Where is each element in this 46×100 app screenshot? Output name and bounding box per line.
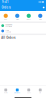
staticText: Coupons: [5, 24, 12, 26]
staticText: 1,280 pts: [5, 31, 11, 33]
staticText: Recv: [27, 19, 31, 20]
button[interactable]: Ship: [11, 14, 23, 20]
staticText: Rate: [39, 19, 42, 20]
button[interactable]: Coupons: [0, 23, 46, 28]
button[interactable]: Cart: [23, 89, 34, 94]
staticText: Ship: [16, 19, 19, 20]
staticText: 9:41: [2, 0, 9, 4]
button[interactable]: Me: [34, 89, 46, 94]
staticText: Orders: [1, 6, 10, 9]
button[interactable]: Recv: [23, 14, 34, 20]
button[interactable]: Points: [0, 28, 46, 34]
button[interactable]: Rate: [34, 14, 46, 20]
staticText: Pay: [4, 19, 7, 20]
button[interactable]: Pay: [0, 14, 11, 20]
staticText: All Orders: [1, 36, 15, 39]
staticText: Me: [39, 92, 41, 94]
staticText: 3 available: [5, 26, 12, 27]
button[interactable]: Orders: [11, 89, 23, 94]
staticText: Orders: [14, 92, 20, 94]
staticText: Home: [4, 92, 8, 94]
staticText: Points: [5, 29, 9, 31]
staticText: Cart: [27, 92, 30, 94]
button[interactable]: Home: [0, 89, 11, 94]
